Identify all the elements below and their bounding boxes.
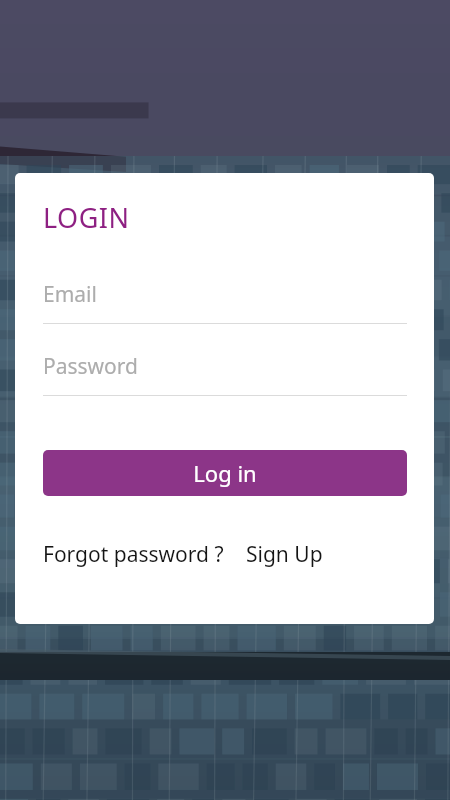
button[interactable]: Log in [43,450,407,496]
staticText: Log in [193,458,257,488]
staticText: Password [43,352,138,381]
staticText: Sign Up [246,540,323,569]
button[interactable]: Forgot password ? [43,540,224,569]
button[interactable]: Sign Up [246,540,323,569]
staticText: Email [43,280,97,309]
staticText: Forgot password ? [43,540,224,569]
staticText: LOGIN [43,199,130,236]
